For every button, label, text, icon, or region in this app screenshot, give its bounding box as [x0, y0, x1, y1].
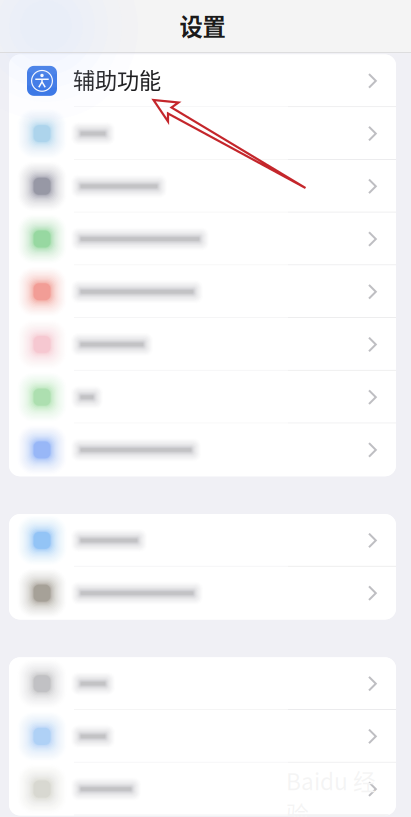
- button[interactable]: [9, 160, 396, 213]
- button[interactable]: [9, 318, 396, 371]
- button[interactable]: [9, 567, 396, 619]
- button[interactable]: [9, 710, 396, 763]
- button[interactable]: [9, 514, 396, 567]
- button[interactable]: [9, 763, 396, 815]
- button[interactable]: [9, 213, 396, 265]
- staticText: Baidu 经验: [286, 764, 376, 817]
- button[interactable]: [9, 107, 396, 160]
- staticText: 设置: [179, 9, 225, 42]
- button[interactable]: [9, 371, 396, 423]
- button[interactable]: [9, 265, 396, 318]
- button[interactable]: [9, 657, 396, 710]
- button[interactable]: [9, 423, 396, 476]
- staticText: 辅助功能: [73, 63, 161, 95]
- button[interactable]: 辅助功能: [9, 54, 396, 107]
